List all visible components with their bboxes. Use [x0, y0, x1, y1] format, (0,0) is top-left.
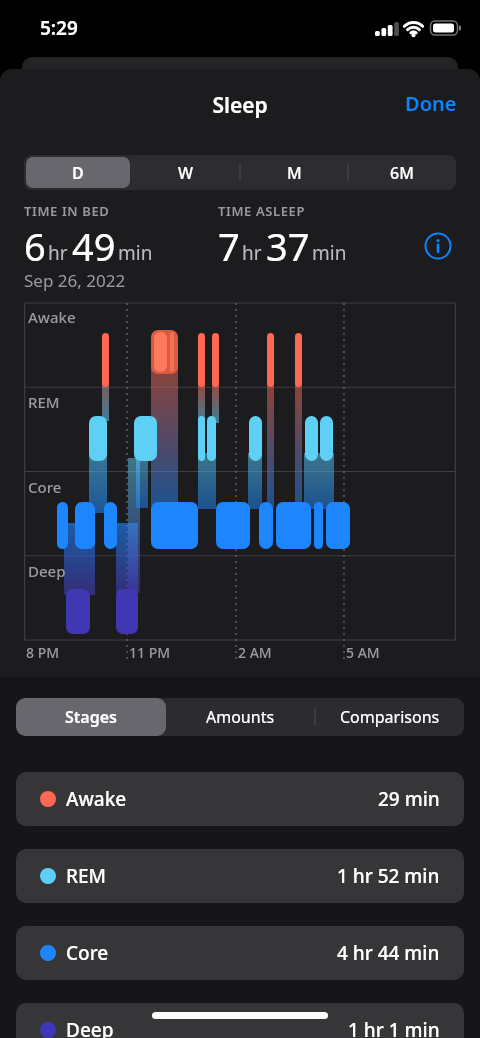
button[interactable]: REM	[16, 849, 464, 903]
staticText: TIME ASLEEP	[218, 202, 306, 220]
staticText: D	[72, 162, 84, 184]
staticText: min	[118, 240, 153, 266]
staticText: M	[287, 162, 302, 184]
button[interactable]: M	[240, 155, 348, 190]
staticText: Awake	[28, 307, 76, 327]
staticText: Core	[28, 477, 62, 497]
staticText: Awake	[66, 786, 127, 812]
staticText: 8 PM	[26, 643, 60, 662]
staticText: hr	[48, 240, 68, 266]
staticText: TIME IN BED	[24, 202, 110, 220]
button[interactable]	[424, 232, 452, 260]
staticText: REM	[28, 392, 60, 412]
staticText: 7	[218, 220, 240, 272]
staticText: 29 min	[378, 786, 440, 812]
staticText: hr	[242, 240, 262, 266]
button[interactable]: Stages	[16, 698, 166, 736]
staticText: 6M	[390, 162, 414, 184]
staticText: 4 hr 44 min	[337, 940, 440, 966]
button[interactable]: Awake	[16, 772, 464, 826]
staticText: W	[178, 162, 194, 184]
staticText: 1 hr 52 min	[337, 863, 440, 889]
staticText: 11 PM	[129, 643, 171, 662]
staticText: Done	[405, 90, 457, 117]
staticText: Comparisons	[340, 706, 440, 728]
staticText: Sep 26, 2022	[24, 269, 126, 292]
staticText: 1 hr 1 min	[348, 1017, 440, 1038]
staticText: Sleep	[0, 91, 480, 120]
button[interactable]: Deep	[16, 1003, 464, 1038]
button[interactable]: Core	[16, 926, 464, 980]
staticText: Stages	[65, 706, 117, 728]
button[interactable]: Comparisons	[315, 698, 464, 736]
staticText: 6	[24, 220, 46, 272]
staticText: 5:29	[40, 15, 78, 41]
button[interactable]: Amounts	[166, 698, 315, 736]
button[interactable]: D	[26, 157, 130, 188]
staticText: min	[312, 240, 347, 266]
staticText: 37	[266, 220, 310, 272]
staticText: 2 AM	[238, 643, 272, 662]
button[interactable]: 6M	[348, 155, 456, 190]
staticText: Deep	[28, 561, 66, 581]
staticText: REM	[66, 863, 107, 889]
button[interactable]: W	[132, 155, 240, 190]
staticText: Amounts	[206, 706, 275, 728]
staticText: Core	[66, 940, 109, 966]
staticText: Deep	[66, 1017, 114, 1038]
staticText: 49	[72, 220, 116, 272]
button[interactable]: Done	[396, 88, 466, 118]
staticText: 5 AM	[346, 643, 380, 662]
